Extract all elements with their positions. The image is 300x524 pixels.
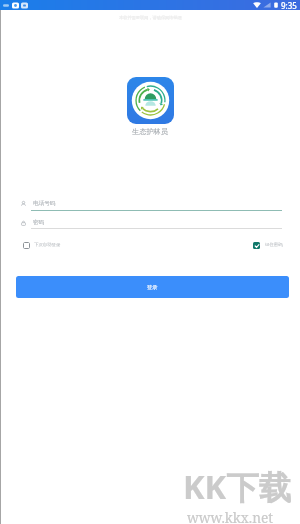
- staticText: 下次自动登录: [34, 242, 61, 248]
- staticText: 密码: [33, 219, 45, 226]
- staticText: 生态护林员: [132, 127, 168, 136]
- button[interactable]: 记住密码: [253, 240, 283, 250]
- staticText: 本软件需要联网，请确保网络畅通: [119, 15, 182, 20]
- staticText: 记住密码: [265, 242, 283, 248]
- button[interactable]: 电话号码: [0, 197, 300, 210]
- staticText: KK下载: [183, 464, 292, 508]
- staticText: www.kkx.net: [187, 508, 274, 524]
- button[interactable]: 密码: [0, 216, 300, 229]
- button[interactable]: 登录: [16, 276, 289, 298]
- staticText: 电话号码: [33, 200, 56, 207]
- button[interactable]: 下次自动登录: [23, 240, 61, 250]
- staticText: 登录: [147, 284, 158, 291]
- staticText: 9:35: [281, 0, 297, 10]
